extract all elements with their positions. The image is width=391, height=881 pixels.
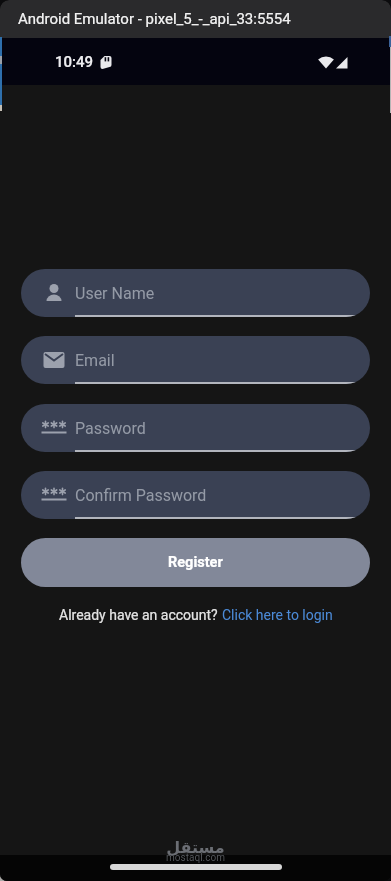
staticText: Android Emulator - pixel_5_-_api_33:5554 (18, 10, 291, 28)
button[interactable]: Password (21, 404, 370, 452)
button[interactable]: Click here to login (222, 607, 333, 623)
button[interactable]: Email (21, 336, 370, 384)
staticText: Register (168, 554, 223, 571)
staticText: Confirm Password (75, 486, 207, 505)
staticText: Password (75, 419, 146, 438)
staticText: Already have an account? (59, 607, 222, 623)
button[interactable]: Register (21, 538, 370, 587)
staticText: 10:49 (55, 53, 94, 71)
button[interactable]: Confirm Password (21, 471, 370, 519)
staticText: User Name (75, 284, 155, 303)
staticText: mostaql.com (0, 852, 391, 864)
staticText: مستقل (0, 838, 391, 857)
button[interactable]: User Name (21, 269, 370, 317)
staticText: Email (75, 351, 115, 370)
